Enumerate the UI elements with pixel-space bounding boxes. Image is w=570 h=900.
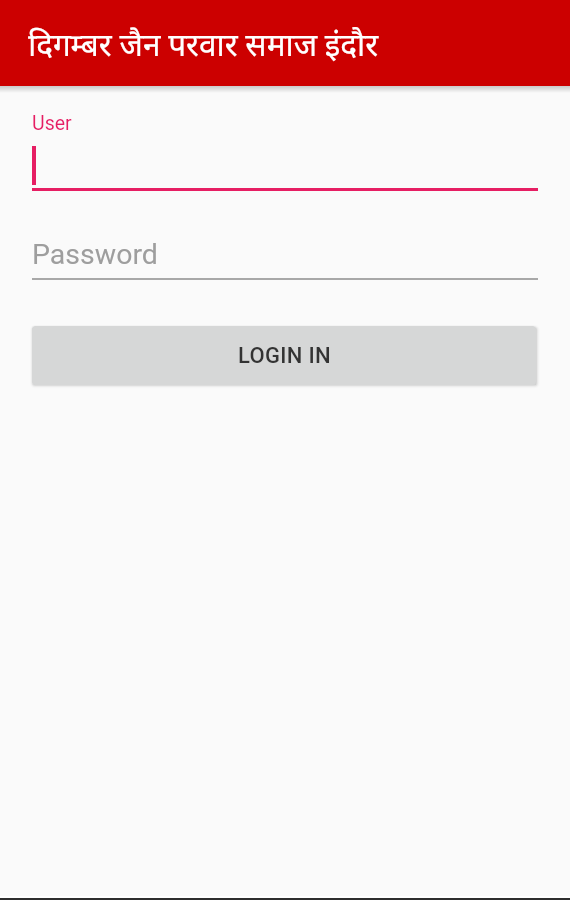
staticText: LOGIN IN xyxy=(238,343,331,369)
button[interactable]: LOGIN IN xyxy=(32,326,536,385)
button[interactable]: Password input field xyxy=(32,230,538,282)
staticText: User xyxy=(32,112,72,135)
button[interactable]: User name input field xyxy=(32,104,538,192)
staticText: दिगम्बर जैन परवार समाज इंदौर xyxy=(28,22,379,65)
staticText: Password xyxy=(32,238,158,271)
